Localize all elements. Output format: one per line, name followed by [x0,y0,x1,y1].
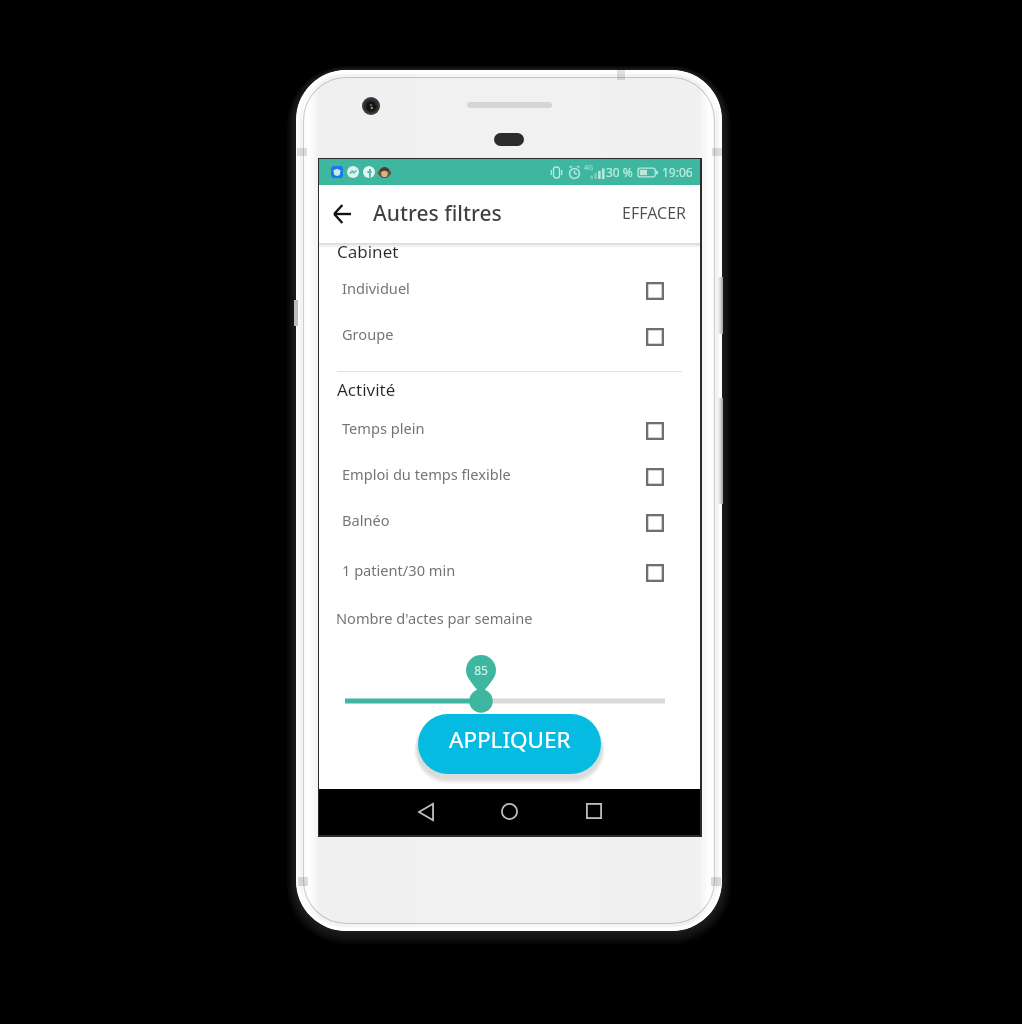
staticText: Groupe [342,324,394,344]
button[interactable]: Temps plein [319,405,700,451]
staticText: Autres filtres [373,199,502,228]
button[interactable]: Recent apps [572,789,616,833]
staticText: 85 [461,662,501,678]
staticText: Activité [337,378,396,401]
staticText: EFFACER [622,202,687,224]
staticText: APPLIQUER [449,724,571,755]
button[interactable]: Balnéo [319,497,700,543]
button[interactable]: Back [322,194,362,234]
staticText: Cabinet [337,240,399,263]
button[interactable]: APPLIQUER [418,714,601,774]
button[interactable]: Home [487,789,531,833]
staticText: Individuel [342,278,410,298]
staticText: Emploi du temps flexible [342,464,511,484]
button[interactable]: Individuel [319,265,700,311]
staticText: Temps plein [342,418,425,438]
staticText: Balnéo [342,510,390,530]
staticText: 19:06 [662,164,693,180]
button[interactable]: EFFACER [609,193,700,235]
staticText: Nombre d'actes par semaine [336,608,533,628]
button[interactable]: 1 patient/30 min [319,547,700,593]
button[interactable]: Back [404,790,448,834]
staticText: 4G [584,163,594,173]
button[interactable]: Groupe [319,311,700,357]
button[interactable]: Emploi du temps flexible [319,451,700,497]
staticText: 1 patient/30 min [342,560,456,580]
staticText: 30 % [606,164,633,180]
